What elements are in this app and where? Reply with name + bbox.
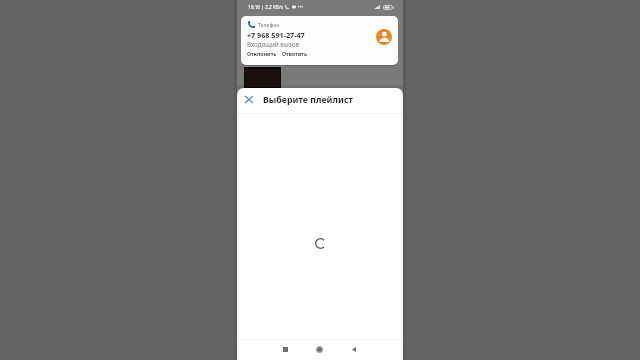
button[interactable]: Главный экран [307, 338, 331, 360]
staticText: 10:16 | 2,2 KB/s [248, 4, 283, 10]
button[interactable]: Назад [342, 338, 366, 360]
staticText: Телефон [258, 21, 280, 28]
button[interactable]: Недавние приложения [273, 338, 297, 360]
staticText: Выберите плейлист [263, 94, 353, 106]
button[interactable]: Ответить [282, 50, 308, 57]
button[interactable]: Телефон [241, 16, 398, 65]
button[interactable]: Отклонить [247, 50, 277, 57]
staticText: Входящий вызов [247, 40, 300, 49]
staticText: +7 968 591-27-47 [247, 30, 305, 40]
staticText: ••• [298, 4, 304, 10]
button[interactable]: Закрыть [240, 91, 257, 108]
